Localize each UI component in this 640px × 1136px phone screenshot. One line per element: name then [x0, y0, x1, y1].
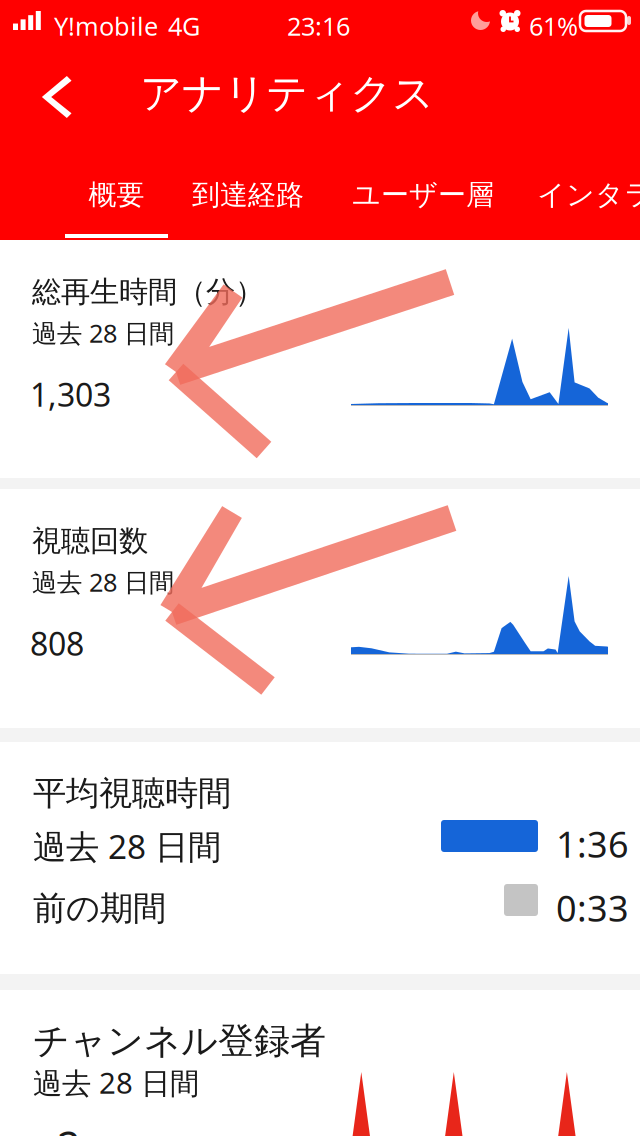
staticText: インタラ	[537, 178, 640, 212]
staticText: 前の期間	[33, 888, 166, 929]
staticText: 1:36	[556, 820, 629, 868]
staticText: 平均視聴時間	[33, 773, 231, 814]
staticText: 過去 28 日間	[32, 565, 174, 599]
staticText: チャンネル登録者	[33, 1019, 326, 1063]
staticText: 過去 28 日間	[32, 316, 174, 350]
staticText: 過去 28 日間	[33, 824, 221, 868]
staticText: アナリティクス	[140, 68, 434, 119]
staticText: 0:33	[556, 884, 629, 932]
button[interactable]: ユーザー層	[340, 163, 506, 227]
staticText: 23:16	[287, 9, 350, 43]
staticText: 4G	[168, 9, 200, 43]
staticText: ユーザー層	[352, 178, 494, 212]
staticText: 過去 28 日間	[33, 1063, 199, 1102]
staticText: 1,303	[30, 373, 111, 415]
button[interactable]: 到達経路	[178, 163, 318, 227]
button[interactable]: Back	[14, 52, 104, 142]
staticText: 概要	[88, 178, 144, 212]
staticText: 総再生時間（分）	[32, 274, 264, 310]
staticText: 到達経路	[192, 178, 304, 212]
staticText: 61%	[529, 9, 578, 43]
button[interactable]: 概要	[65, 163, 168, 227]
staticText: Y!mobile	[54, 9, 158, 43]
button[interactable]: インタラ	[525, 163, 640, 227]
staticText: +2	[33, 1118, 81, 1136]
staticText: 808	[30, 622, 84, 664]
staticText: 視聴回数	[32, 523, 148, 559]
